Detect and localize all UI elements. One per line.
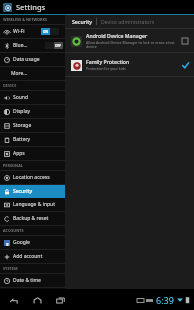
button[interactable]: Data usage	[0, 53, 65, 66]
staticText: ACCOUNTS	[3, 228, 24, 233]
staticText: WIRELESS & NETWORKS	[3, 17, 48, 22]
staticText: Location access	[13, 174, 50, 181]
staticText: More...	[11, 70, 28, 77]
button[interactable]: Add account	[0, 250, 65, 263]
staticText: Language & input	[13, 201, 55, 208]
button[interactable]: Display	[0, 105, 65, 118]
staticText: PERSONAL	[3, 163, 23, 168]
button[interactable]: Security	[71, 18, 93, 25]
button[interactable]: Battery	[0, 133, 65, 146]
button[interactable]: Language & input	[0, 198, 65, 211]
staticText: Bluetooth	[13, 42, 29, 49]
staticText: Family Protection	[86, 58, 130, 65]
staticText: Battery	[13, 136, 31, 143]
button[interactable]: Family Protection	[65, 53, 194, 76]
staticText: SYSTEM	[3, 266, 18, 271]
staticText: Google	[13, 239, 30, 246]
staticText: Apps	[13, 150, 25, 157]
staticText: 6:39	[156, 294, 174, 306]
staticText: Sound	[13, 94, 29, 101]
staticText: Date & time	[13, 277, 41, 284]
staticText: Protection for your kids	[86, 66, 126, 71]
button[interactable]: Sound	[0, 91, 65, 104]
button[interactable]: Status	[137, 294, 194, 306]
button[interactable]: Recent apps	[53, 293, 67, 307]
staticText: DEVICE	[3, 83, 17, 88]
staticText: Device administrators	[101, 18, 155, 25]
button[interactable]: Date & time	[0, 274, 65, 287]
staticText: Data usage	[13, 56, 40, 63]
button[interactable]: Wi-Fi	[0, 25, 65, 38]
staticText: Android Device Manager	[86, 32, 148, 39]
staticText: Backup & reset	[13, 215, 49, 222]
button[interactable]: Backup & reset	[0, 212, 65, 225]
staticText: Wi-Fi	[13, 28, 25, 35]
staticText: Storage	[13, 122, 32, 129]
staticText: Allow Android Device Manager to lock or …	[86, 40, 177, 50]
staticText: Settings	[16, 2, 46, 12]
staticText: Display	[13, 108, 31, 115]
button[interactable]: g	[0, 236, 65, 249]
button[interactable]: Off	[45, 42, 63, 49]
button[interactable]: Apps	[0, 147, 65, 160]
button[interactable]: On	[41, 28, 59, 35]
button[interactable]: Storage	[0, 119, 65, 132]
staticText: g	[6, 241, 9, 246]
staticText: OFF	[55, 44, 62, 48]
button[interactable]: More...	[0, 67, 65, 80]
staticText: Security	[13, 188, 33, 195]
button[interactable]: Device administrators	[100, 18, 156, 25]
button[interactable]: Bluetooth	[0, 39, 65, 52]
button[interactable]: Android Device Manager	[65, 29, 194, 52]
button[interactable]: Back	[7, 293, 21, 307]
button[interactable]: Security	[0, 185, 65, 198]
staticText: ON	[43, 30, 49, 34]
button[interactable]: Home	[30, 293, 44, 307]
staticText: Security	[72, 18, 92, 25]
staticText: Add account	[13, 253, 43, 260]
button[interactable]: Location access	[0, 171, 65, 184]
